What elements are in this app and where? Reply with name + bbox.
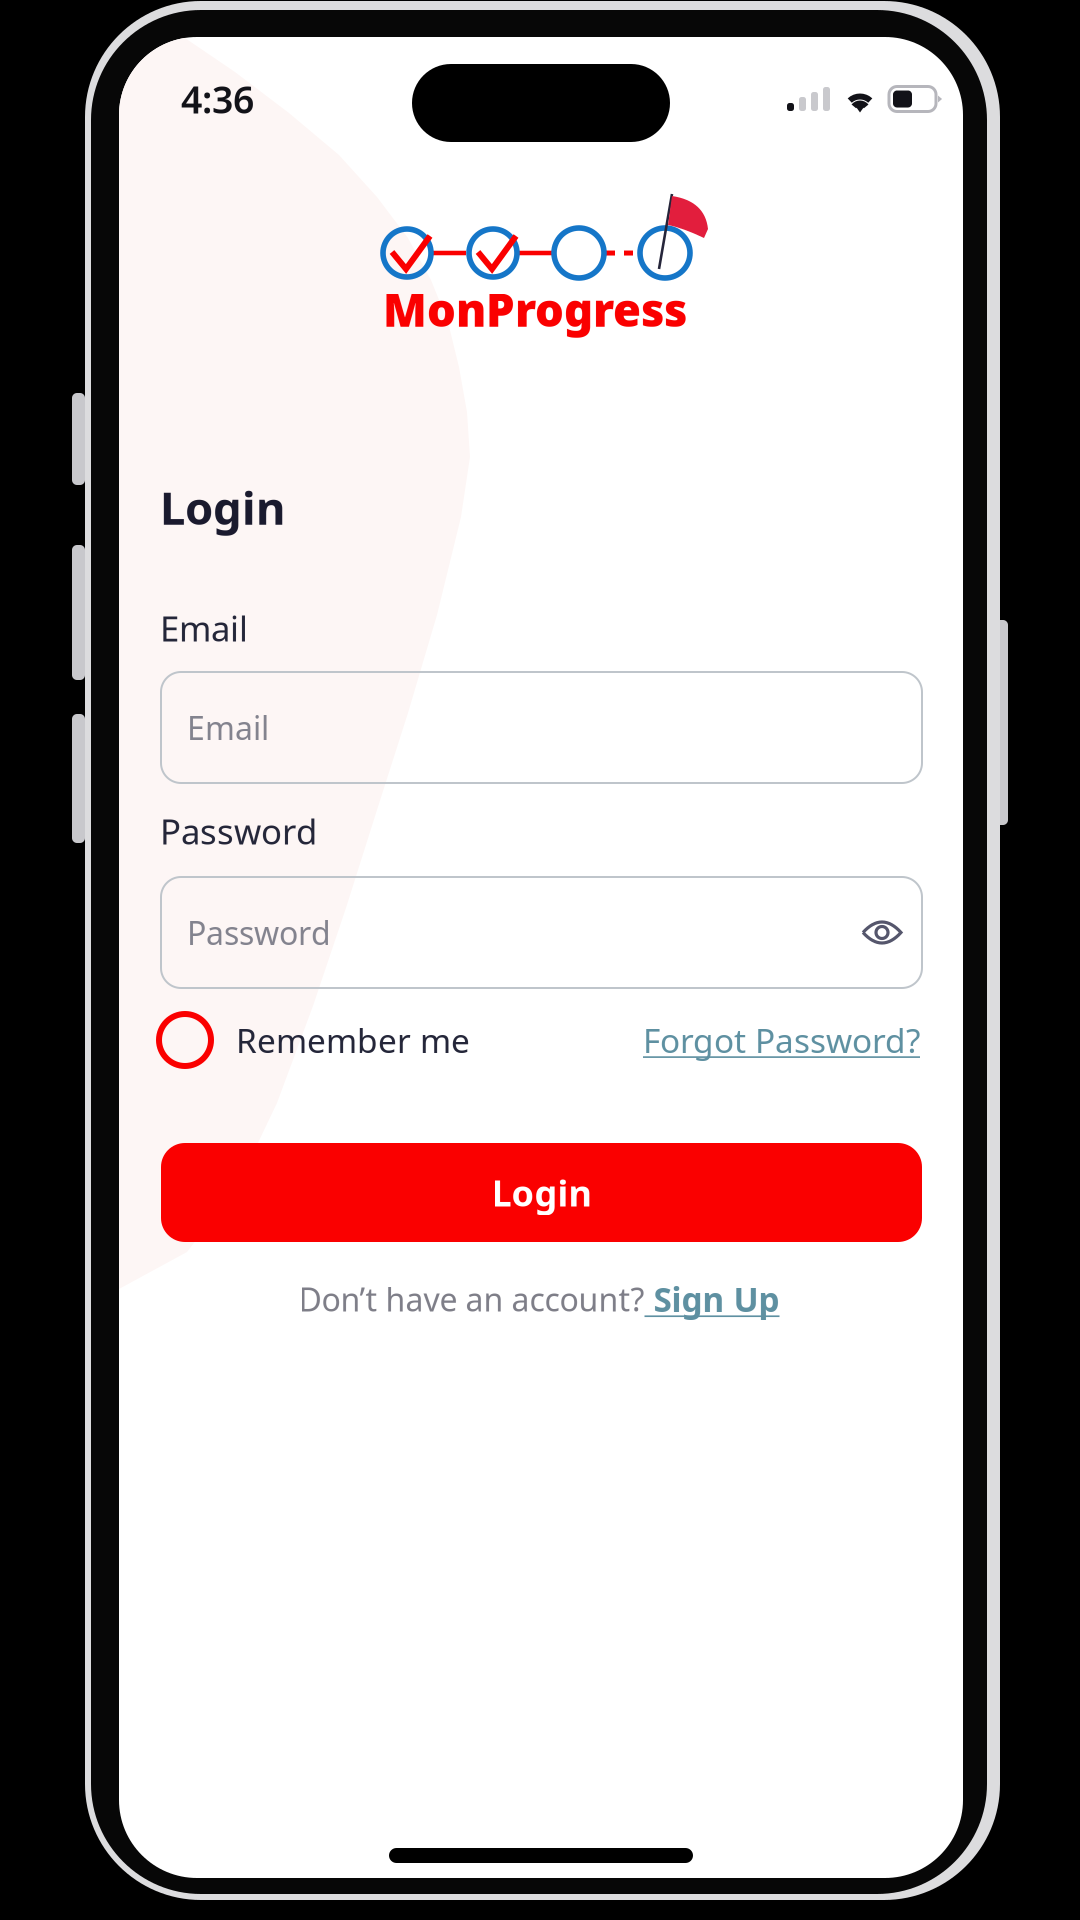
staticText: Email (187, 706, 269, 749)
staticText: Password (160, 808, 317, 854)
staticText: Password (187, 911, 331, 954)
staticText: Forgot Password? (643, 1018, 920, 1062)
button[interactable]: Show password (836, 886, 928, 978)
button[interactable]: Sign Up (644, 1277, 779, 1321)
button[interactable]: Forgot Password? (643, 1010, 920, 1070)
button[interactable]: Remember me (159, 1010, 470, 1070)
staticText: Login (160, 477, 285, 537)
staticText: Remember me (236, 1018, 470, 1062)
staticText: Email (160, 605, 248, 651)
staticText: MonProgress (383, 279, 687, 339)
button[interactable]: Login (161, 1143, 922, 1242)
staticText: Don’t have an account? (298, 1278, 644, 1320)
staticText: Login (491, 1169, 591, 1216)
staticText: Sign Up (644, 1277, 779, 1321)
staticText: 4:36 (181, 74, 254, 124)
